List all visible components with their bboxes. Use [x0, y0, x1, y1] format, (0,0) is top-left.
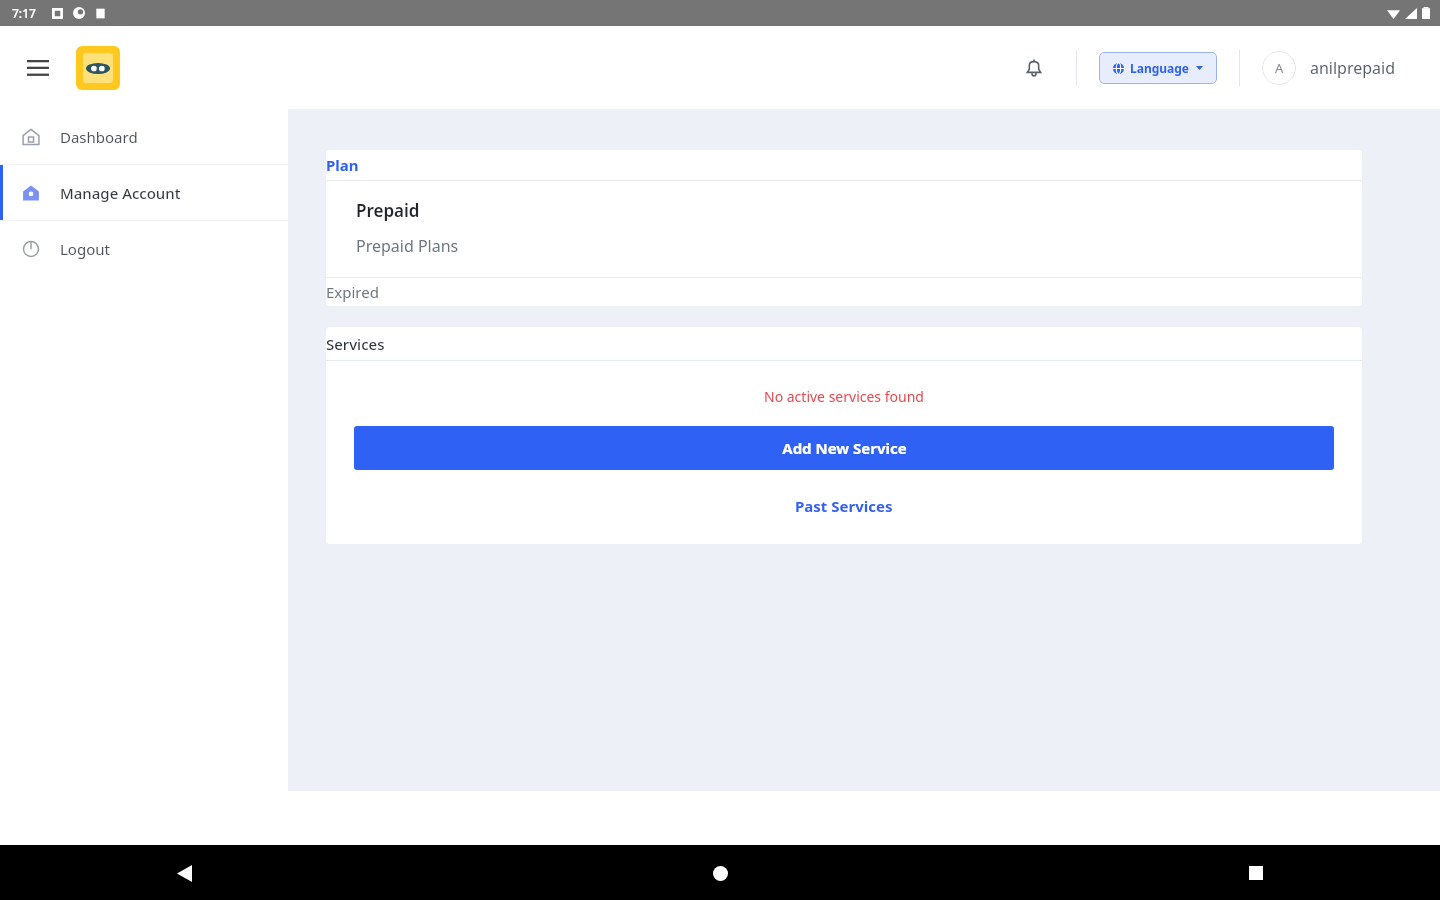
staticText: Language	[1130, 60, 1190, 76]
staticText: Plan	[326, 155, 359, 175]
staticText: Past Services	[795, 496, 893, 516]
staticText: Services	[326, 334, 385, 354]
button[interactable]: Past Services	[785, 492, 903, 520]
staticText: Prepaid Plans	[356, 235, 459, 257]
staticText: Logout	[60, 239, 110, 259]
button[interactable]: Language	[1099, 52, 1217, 84]
button[interactable]: Home	[696, 849, 744, 897]
button[interactable]: Add New Service	[354, 426, 1334, 470]
button[interactable]: Back	[160, 849, 208, 897]
button[interactable]: Logo	[76, 46, 120, 90]
button[interactable]: Logout	[0, 221, 288, 276]
staticText: Add New Service	[782, 438, 907, 458]
staticText: Manage Account	[60, 183, 181, 203]
button[interactable]: Manage Account	[0, 165, 288, 220]
button[interactable]: Menu	[20, 50, 56, 86]
staticText: Prepaid	[356, 199, 420, 222]
staticText: anilprepaid	[1310, 57, 1396, 79]
button[interactable]: Dashboard	[0, 109, 288, 164]
button[interactable]: Notifications	[1014, 48, 1054, 88]
staticText: 7:17	[12, 5, 36, 21]
button[interactable]: Recents	[1232, 849, 1280, 897]
staticText: Expired	[326, 282, 379, 302]
staticText: No active services found	[764, 387, 924, 406]
staticText: Dashboard	[60, 127, 138, 147]
button[interactable]: A	[1262, 51, 1396, 85]
staticText: A	[1275, 59, 1284, 77]
